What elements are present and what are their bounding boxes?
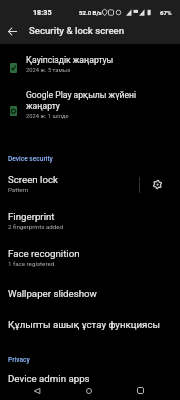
button[interactable]: Screen lock (0, 173, 180, 203)
button[interactable]: Fingerprint (0, 210, 180, 240)
staticText: 18:35 (33, 8, 52, 16)
button[interactable]: Google Play арқылы жүйені жаңарту (0, 89, 180, 130)
staticText: Face recognition (8, 248, 80, 259)
staticText: Device security (8, 155, 53, 163)
staticText: Security & lock screen (29, 25, 125, 36)
button[interactable]: Screen lock settings (147, 174, 167, 194)
staticText: Screen lock (8, 174, 58, 185)
staticText: Wallpaper slideshow (8, 288, 97, 299)
staticText: Fingerprint (8, 211, 55, 222)
staticText: 2 fingerprints added (8, 223, 64, 230)
staticText: Privacy (8, 356, 30, 364)
button[interactable]: Recent apps (130, 381, 150, 400)
staticText: 67% (160, 9, 172, 16)
button[interactable]: Құлыпты ашық ұстау функциясы (0, 318, 180, 344)
staticText: Google Play арқылы жүйені жаңарту (26, 90, 157, 111)
button[interactable]: Navigate up (4, 23, 20, 39)
button[interactable]: Back (27, 381, 47, 400)
staticText: Pattern (8, 186, 29, 193)
staticText: Құлыпты ашық ұстау функциясы (8, 319, 161, 330)
button[interactable]: Wallpaper slideshow (0, 287, 180, 313)
button[interactable]: Home (79, 381, 99, 400)
button[interactable]: Face recognition (0, 247, 180, 277)
staticText: Device admin apps (8, 373, 90, 384)
staticText: 1 face registered (8, 260, 55, 267)
button[interactable]: Device admin apps (0, 372, 180, 384)
staticText: 2024 ж. 1 шілде (26, 113, 69, 120)
staticText: 52.0 B/s (79, 9, 102, 16)
staticText: 2024 ж. 5 тамыз (26, 67, 71, 74)
staticText: Қауіпсіздік жаңартуы (26, 55, 114, 65)
button[interactable]: Қауіпсіздік жаңартуы (0, 54, 180, 84)
